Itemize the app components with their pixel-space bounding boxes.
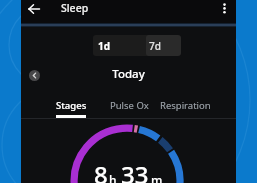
button[interactable]: Respiration xyxy=(159,93,212,117)
staticText: Respiration xyxy=(160,99,211,112)
staticText: 1d xyxy=(98,39,111,53)
staticText: Stages xyxy=(56,99,87,112)
staticText: Pulse Ox xyxy=(110,99,149,112)
staticText: m xyxy=(151,172,163,183)
staticText: h xyxy=(109,172,117,183)
button[interactable]: 7d xyxy=(146,35,181,56)
staticText: 7d xyxy=(149,39,161,53)
button[interactable]: Stages xyxy=(47,93,96,117)
button[interactable] xyxy=(24,0,46,23)
staticText: 8 xyxy=(94,158,108,183)
staticText: 33 xyxy=(121,158,149,183)
button[interactable]: Pulse Ox xyxy=(106,93,153,117)
staticText: Sleep xyxy=(61,1,89,15)
button[interactable] xyxy=(215,0,233,23)
button[interactable] xyxy=(29,70,40,81)
staticText: Today xyxy=(21,66,236,82)
button[interactable]: 1d xyxy=(93,35,146,56)
